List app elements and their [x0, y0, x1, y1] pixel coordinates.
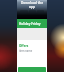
- staticText: Holiday Friday: [19, 22, 41, 26]
- staticText: Offers: [19, 44, 29, 48]
- button[interactable]: App store badge: [37, 10, 44, 14]
- button[interactable]: App store badge: [20, 10, 28, 14]
- button[interactable]: [18, 67, 46, 72]
- button[interactable]: Holiday Friday: [17, 19, 47, 28]
- staticText: Download the app: [18, 1, 46, 9]
- button[interactable]: App store badge: [29, 10, 36, 14]
- staticText: item name: [19, 49, 33, 53]
